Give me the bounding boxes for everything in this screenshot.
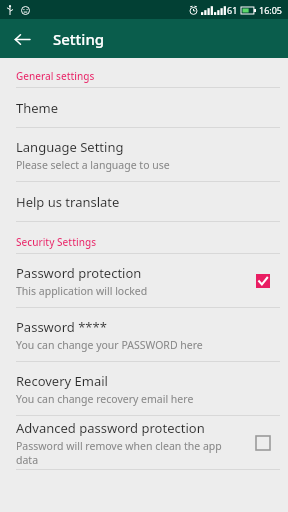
staticText: Password will remove when clean the app …	[16, 439, 244, 467]
staticText: Theme	[16, 99, 59, 117]
button[interactable]: Advanced password protection disabled	[252, 432, 274, 454]
staticText: 61	[227, 4, 238, 16]
staticText: 16:05	[259, 4, 283, 16]
button[interactable]: Theme	[0, 88, 288, 127]
staticText: You can change recovery email here	[16, 392, 194, 406]
staticText: Language Setting	[16, 138, 124, 156]
button[interactable]: Language Setting	[0, 128, 288, 181]
button[interactable]: Advanced password protection	[0, 416, 288, 469]
staticText: Please select a language to use	[16, 158, 170, 172]
staticText: Password ****	[16, 318, 107, 336]
button[interactable]: Password ****	[0, 308, 288, 361]
staticText: You can change your PASSWORD here	[16, 338, 203, 352]
staticText: Security Settings	[16, 235, 96, 249]
staticText: Help us translate	[16, 193, 120, 211]
staticText: Password protection	[16, 264, 142, 282]
button[interactable]: Back	[6, 23, 38, 55]
button[interactable]: Password protection	[0, 254, 288, 307]
button[interactable]: Recovery Email	[0, 362, 288, 415]
staticText: This application will locked	[16, 284, 148, 298]
button[interactable]: Password protection enabled	[252, 270, 274, 292]
button[interactable]: Help us translate	[0, 182, 288, 221]
staticText: General settings	[16, 69, 95, 83]
staticText: Recovery Email	[16, 372, 108, 390]
staticText: Setting	[53, 29, 105, 49]
staticText: Advanced password protection	[16, 419, 205, 437]
